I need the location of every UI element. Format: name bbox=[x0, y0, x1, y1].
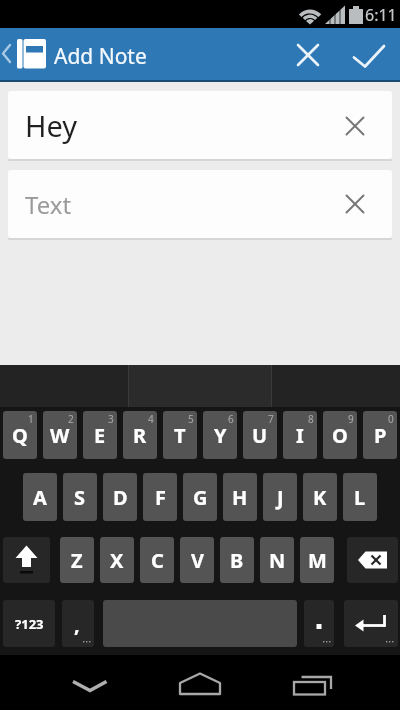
button[interactable]: Hey bbox=[8, 91, 392, 159]
staticText: F bbox=[155, 484, 166, 511]
button[interactable]: W bbox=[43, 411, 77, 459]
staticText: 6:11 bbox=[365, 4, 397, 26]
button[interactable] bbox=[304, 600, 334, 647]
button[interactable]: Text bbox=[8, 170, 392, 238]
button[interactable]: H bbox=[223, 473, 257, 521]
staticText: Y bbox=[214, 422, 227, 449]
button[interactable]: B bbox=[220, 537, 254, 583]
staticText: 9 bbox=[348, 412, 354, 426]
staticText: 6 bbox=[228, 412, 234, 426]
button[interactable] bbox=[62, 665, 118, 701]
staticText: O bbox=[332, 422, 348, 449]
staticText: K bbox=[313, 484, 327, 511]
staticText: Hey bbox=[25, 106, 78, 145]
staticText: X bbox=[110, 547, 124, 574]
button[interactable]: K bbox=[303, 473, 337, 521]
staticText: T bbox=[174, 422, 186, 449]
button[interactable]: P bbox=[363, 411, 397, 459]
button[interactable] bbox=[348, 35, 392, 77]
button[interactable] bbox=[172, 663, 228, 703]
staticText: 5 bbox=[188, 412, 194, 426]
button[interactable]: ?123 bbox=[3, 600, 55, 647]
staticText: W bbox=[50, 422, 70, 449]
staticText: I bbox=[296, 422, 304, 449]
button[interactable] bbox=[14, 36, 50, 72]
button[interactable]: J bbox=[263, 473, 297, 521]
button[interactable] bbox=[344, 600, 398, 647]
button[interactable]: R bbox=[123, 411, 157, 459]
staticText: H bbox=[232, 484, 248, 511]
staticText: 3 bbox=[108, 412, 114, 426]
staticText: A bbox=[33, 484, 47, 511]
staticText: 0 bbox=[388, 412, 394, 426]
staticText: Q bbox=[12, 422, 28, 449]
staticText: 7 bbox=[268, 412, 274, 426]
button[interactable]: Q bbox=[3, 411, 37, 459]
staticText: Text bbox=[25, 188, 72, 221]
staticText: G bbox=[193, 484, 208, 511]
staticText: Add Note bbox=[54, 42, 147, 71]
button[interactable]: A bbox=[23, 473, 57, 521]
staticText: ?123 bbox=[15, 615, 44, 633]
staticText: J bbox=[277, 484, 284, 511]
staticText: D bbox=[113, 484, 128, 511]
staticText: U bbox=[252, 422, 268, 449]
button[interactable] bbox=[284, 663, 340, 703]
button[interactable]: N bbox=[260, 537, 294, 583]
staticText: , bbox=[74, 611, 80, 638]
staticText: C bbox=[151, 547, 164, 574]
button[interactable]: E bbox=[83, 411, 117, 459]
staticText: 1 bbox=[28, 412, 34, 426]
button[interactable] bbox=[347, 537, 398, 583]
button[interactable]: T bbox=[163, 411, 197, 459]
button[interactable]: C bbox=[140, 537, 174, 583]
staticText: N bbox=[269, 547, 286, 574]
button[interactable]: Y bbox=[203, 411, 237, 459]
staticText: R bbox=[133, 422, 147, 449]
button[interactable] bbox=[0, 40, 14, 68]
button[interactable]: V bbox=[180, 537, 214, 583]
button[interactable]: M bbox=[300, 537, 334, 583]
button[interactable]: S bbox=[63, 473, 97, 521]
staticText: 8 bbox=[308, 412, 314, 426]
button[interactable]: G bbox=[183, 473, 217, 521]
button[interactable]: Z bbox=[60, 537, 94, 583]
staticText: P bbox=[374, 422, 387, 449]
button[interactable]: L bbox=[343, 473, 377, 521]
staticText: S bbox=[74, 484, 86, 511]
button[interactable]: F bbox=[143, 473, 177, 521]
staticText: E bbox=[94, 422, 106, 449]
staticText: B bbox=[230, 547, 244, 574]
staticText: M bbox=[308, 547, 327, 574]
staticText: 2 bbox=[68, 412, 74, 426]
button[interactable]: , bbox=[62, 600, 94, 647]
staticText: L bbox=[354, 484, 366, 511]
staticText: Z bbox=[71, 547, 83, 574]
button[interactable] bbox=[287, 35, 329, 77]
staticText: 4 bbox=[148, 412, 154, 426]
button[interactable]: I bbox=[283, 411, 317, 459]
staticText: V bbox=[191, 547, 204, 574]
button[interactable]: X bbox=[100, 537, 134, 583]
button[interactable]: U bbox=[243, 411, 277, 459]
button[interactable]: O bbox=[323, 411, 357, 459]
button[interactable] bbox=[3, 537, 50, 583]
button[interactable]: D bbox=[103, 473, 137, 521]
